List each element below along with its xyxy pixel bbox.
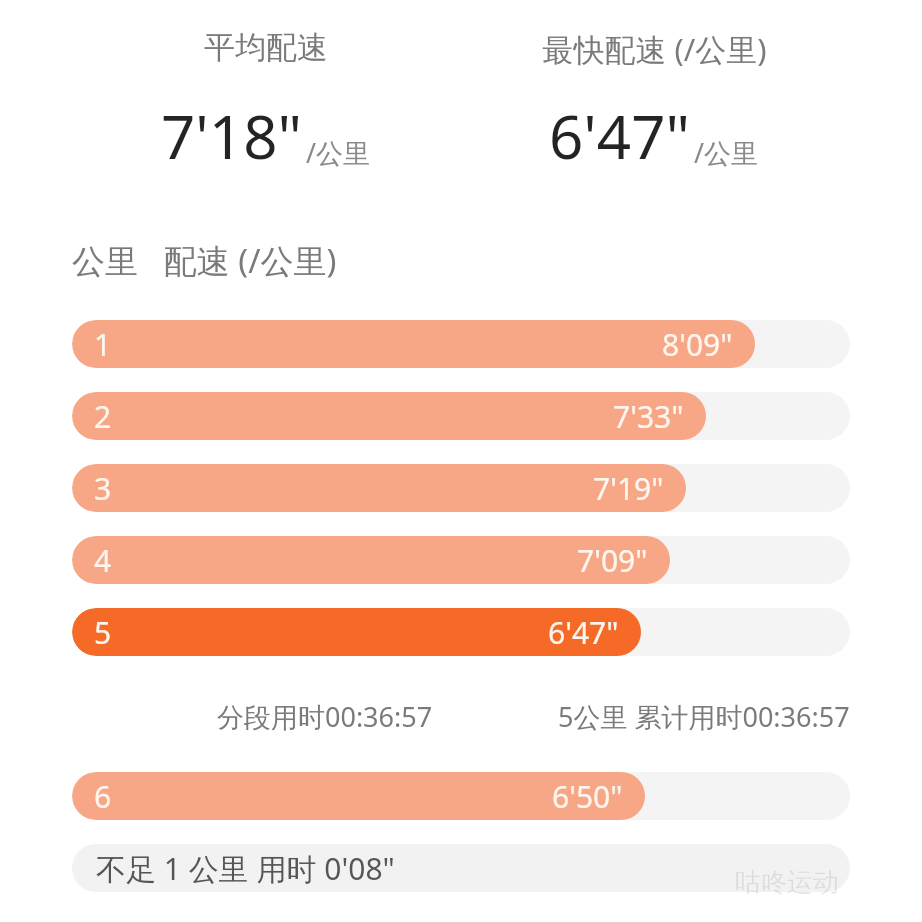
staticText: 7'33" [613, 396, 684, 437]
staticText: 1 [94, 324, 112, 365]
staticText: 6 [94, 776, 112, 817]
button[interactable]: 5 [72, 608, 850, 656]
staticText: 分段用时00:36:57 [217, 698, 433, 735]
staticText: 5 [94, 612, 112, 653]
staticText: 7'18" [161, 95, 302, 177]
staticText: 平均配速 [204, 28, 328, 67]
button[interactable]: 咕咚运动 [735, 866, 839, 899]
button[interactable]: 1 [72, 320, 850, 368]
button[interactable]: 6'47" [454, 95, 854, 177]
staticText: /公里 [694, 134, 759, 171]
button[interactable]: 7'18" [66, 95, 466, 177]
button[interactable]: 平均配速 [66, 28, 466, 67]
staticText: 6'47" [548, 612, 619, 653]
button[interactable]: 6 [72, 772, 850, 820]
staticText: 6'50" [552, 776, 623, 817]
staticText: 5公里 累计用时00:36:57 [558, 698, 850, 735]
staticText: 6'47" [549, 95, 690, 177]
button[interactable]: 4 [72, 536, 850, 584]
button[interactable]: 2 [72, 392, 850, 440]
staticText: 8'09" [662, 324, 733, 365]
staticText: /公里 [306, 134, 371, 171]
staticText: 不足 1 公里 用时 0'08" [96, 848, 395, 889]
button[interactable]: 最快配速 (/公里) [454, 28, 854, 70]
button[interactable]: 不足 1 公里 用时 0'08" [72, 844, 850, 892]
staticText: 咕咚运动 [735, 866, 839, 899]
button[interactable]: 分段用时00:36:57 [72, 698, 850, 735]
button[interactable]: 公里 配速 (/公里) [72, 238, 337, 283]
staticText: 7'09" [577, 540, 648, 581]
staticText: 公里 配速 (/公里) [72, 238, 337, 283]
staticText: 4 [94, 540, 112, 581]
staticText: 2 [94, 396, 112, 437]
staticText: 7'19" [593, 468, 664, 509]
staticText: 3 [94, 468, 112, 509]
staticText: 最快配速 (/公里) [542, 28, 767, 70]
button[interactable]: 3 [72, 464, 850, 512]
